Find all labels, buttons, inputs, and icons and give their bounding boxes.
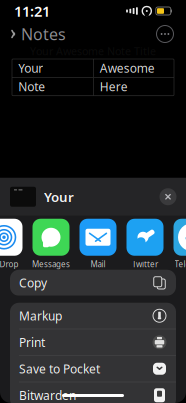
staticText: Here xyxy=(100,79,128,95)
staticText: Awesome xyxy=(100,60,155,76)
button[interactable]: Print xyxy=(10,329,176,355)
staticText: Note xyxy=(18,79,45,95)
staticText: AirDrop xyxy=(0,259,18,269)
staticText: Mail xyxy=(90,259,105,269)
staticText: Your xyxy=(44,188,74,206)
staticText: 11:21 xyxy=(14,1,50,21)
button[interactable]: More options xyxy=(154,23,176,45)
button[interactable]: Copy xyxy=(10,270,176,296)
button[interactable]: Twitter xyxy=(125,219,165,269)
button[interactable]: Markup xyxy=(10,303,176,329)
staticText: Save to Pocket xyxy=(19,361,100,377)
staticText: Bitwarden xyxy=(19,387,76,403)
staticText: Your xyxy=(18,60,43,76)
staticText: Markup xyxy=(19,308,62,324)
button[interactable]: Close xyxy=(156,185,180,209)
button[interactable]: AirDrop xyxy=(0,219,24,269)
button[interactable]: Mail xyxy=(78,219,118,269)
button[interactable]: Save to Pocket xyxy=(10,356,176,382)
staticText: Print xyxy=(19,334,45,350)
staticText: Messages xyxy=(32,259,70,269)
button[interactable]: Notes xyxy=(10,19,72,49)
button[interactable]: Bitwarden xyxy=(10,382,176,403)
button[interactable]: Messages xyxy=(31,219,71,269)
staticText: Notes xyxy=(21,23,66,45)
staticText: Copy xyxy=(19,275,47,291)
button[interactable]: Telegram xyxy=(172,219,186,269)
staticText: Telegram xyxy=(174,259,186,269)
staticText: Twitter xyxy=(132,259,158,269)
